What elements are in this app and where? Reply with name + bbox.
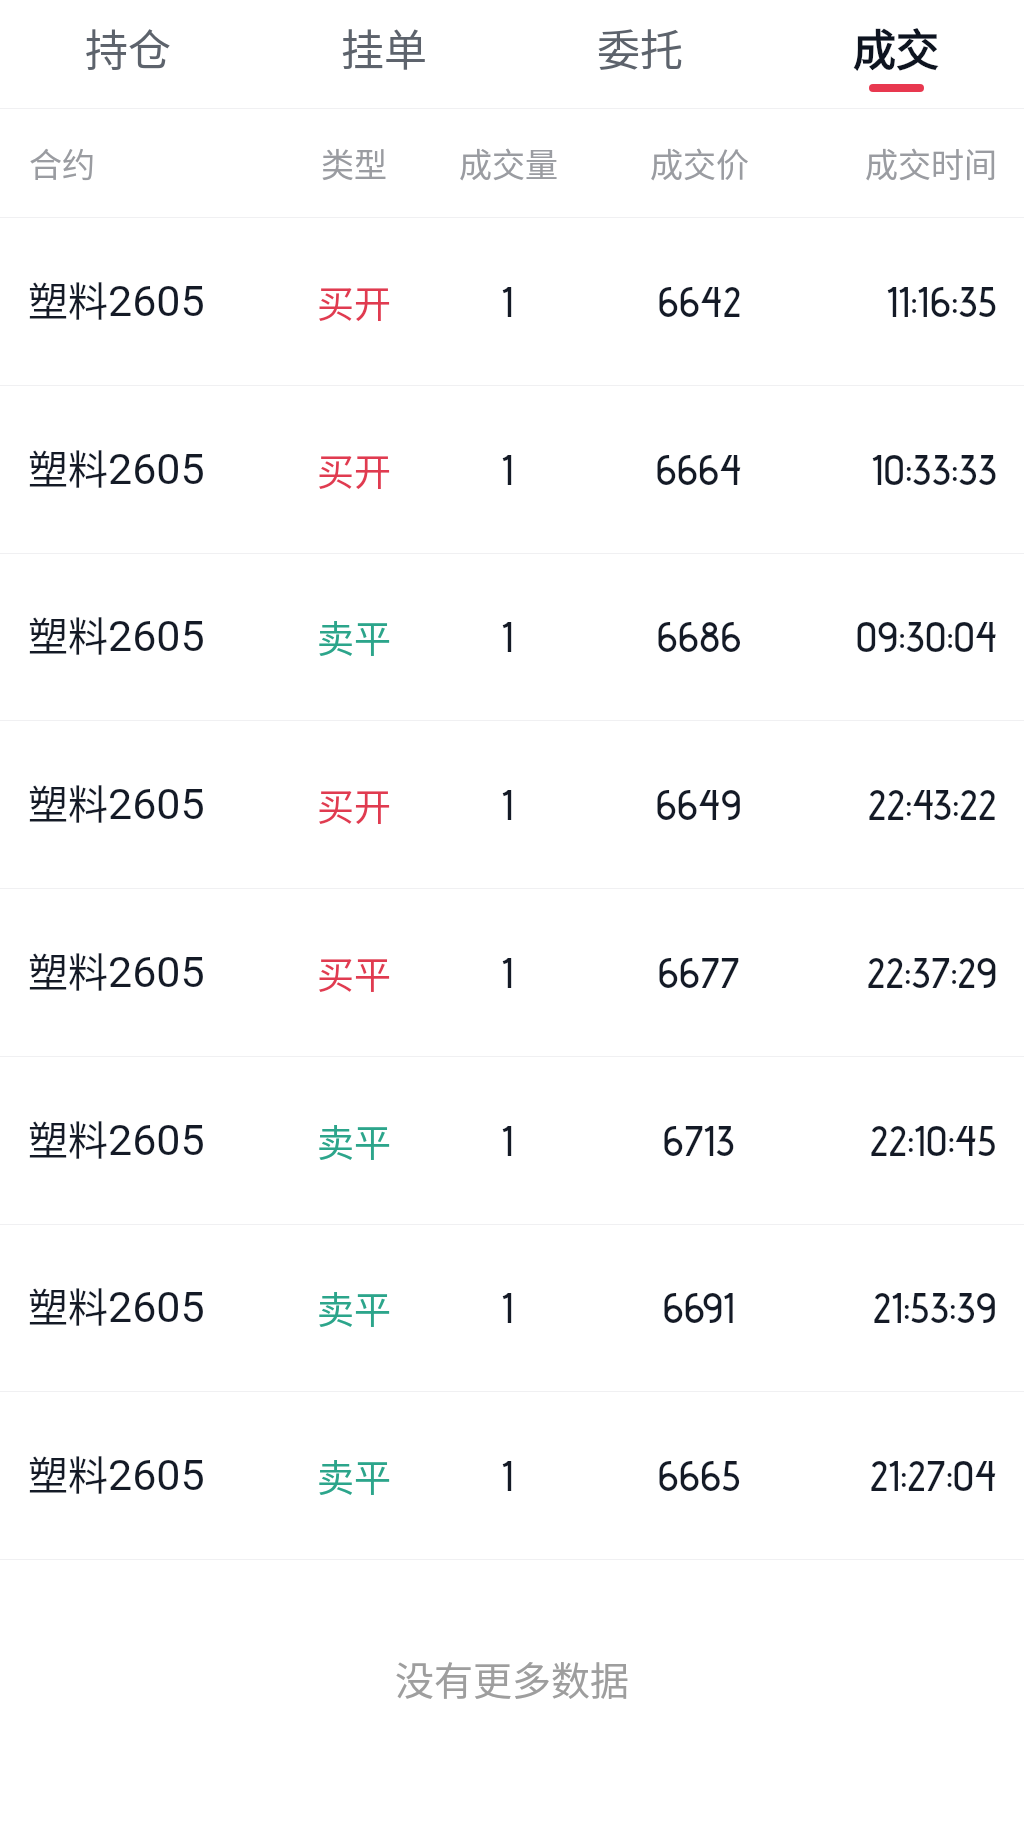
button[interactable]: 塑料2605 (0, 386, 1024, 553)
staticText: 类型 (321, 139, 387, 187)
staticText: 塑料2605 (28, 1109, 205, 1167)
staticText: 6642 (658, 277, 741, 327)
staticText: 买开 (317, 275, 391, 329)
button[interactable]: 塑料2605 (0, 554, 1024, 720)
button[interactable]: 塑料2605 (0, 218, 1024, 385)
staticText: 6677 (658, 948, 740, 998)
staticText: 1 (502, 1116, 514, 1166)
staticText: 22:37:29 (867, 948, 997, 998)
staticText: 1 (502, 1283, 514, 1333)
button[interactable]: 成交 (768, 0, 1024, 108)
button[interactable]: 塑料2605 (0, 1225, 1024, 1391)
staticText: 卖平 (317, 1281, 391, 1335)
staticText: 10:33:33 (872, 445, 997, 495)
staticText: 委托 (597, 16, 683, 78)
staticText: 塑料2605 (28, 605, 205, 663)
staticText: 成交价 (650, 139, 749, 187)
staticText: 6649 (656, 780, 742, 830)
staticText: 塑料2605 (28, 773, 205, 831)
button[interactable]: 持仓 (0, 0, 256, 108)
button[interactable]: 塑料2605 (0, 1392, 1024, 1559)
staticText: 成交量 (459, 139, 558, 187)
staticText: 卖平 (317, 1114, 391, 1168)
staticText: 1 (502, 780, 514, 830)
staticText: 1 (502, 948, 514, 998)
staticText: 买开 (317, 778, 391, 832)
staticText: 买开 (317, 443, 391, 497)
staticText: 合约 (29, 139, 95, 187)
staticText: 6665 (658, 1451, 741, 1501)
button[interactable]: 塑料2605 (0, 889, 1024, 1056)
button[interactable]: 委托 (512, 0, 768, 108)
staticText: 6664 (656, 445, 742, 495)
staticText: 持仓 (85, 16, 171, 78)
staticText: 6686 (657, 612, 742, 662)
staticText: 塑料2605 (28, 941, 205, 999)
staticText: 没有更多数据 (395, 1650, 630, 1706)
staticText: 挂单 (341, 16, 427, 78)
staticText: 塑料2605 (28, 1444, 205, 1502)
staticText: 21:27:04 (870, 1451, 997, 1501)
staticText: 6713 (663, 1116, 735, 1166)
staticText: 成交时间 (865, 139, 997, 187)
staticText: 塑料2605 (28, 438, 205, 496)
staticText: 21:53:39 (873, 1283, 997, 1333)
staticText: 塑料2605 (28, 1276, 205, 1334)
staticText: 6691 (663, 1283, 735, 1333)
button[interactable]: 塑料2605 (0, 721, 1024, 888)
staticText: 09:30:04 (856, 612, 997, 662)
staticText: 22:10:45 (870, 1116, 997, 1166)
staticText: 1 (502, 445, 514, 495)
staticText: 卖平 (317, 1449, 391, 1503)
staticText: 卖平 (317, 610, 391, 664)
staticText: 塑料2605 (28, 270, 205, 328)
staticText: 1 (502, 277, 514, 327)
staticText: 买平 (317, 946, 391, 1000)
staticText: 22:43:22 (868, 780, 997, 830)
staticText: 1 (502, 612, 514, 662)
staticText: 成交 (853, 16, 939, 78)
staticText: 1 (502, 1451, 514, 1501)
staticText: 11:16:35 (887, 277, 997, 327)
button[interactable]: 塑料2605 (0, 1057, 1024, 1224)
button[interactable]: 挂单 (256, 0, 512, 108)
